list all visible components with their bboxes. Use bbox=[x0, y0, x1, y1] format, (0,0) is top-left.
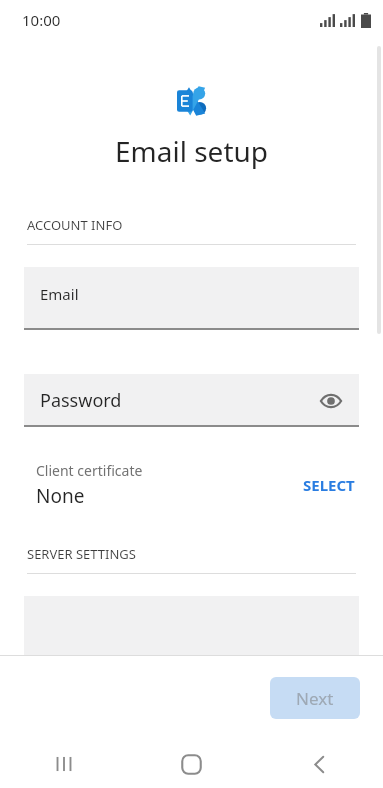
staticText: ACCOUNT INFO bbox=[27, 216, 123, 234]
button[interactable]: Recents bbox=[0, 740, 127, 788]
button[interactable]: Home bbox=[127, 740, 255, 788]
staticText: Password bbox=[40, 388, 122, 413]
button[interactable]: Next bbox=[270, 677, 360, 719]
staticText: 10:00 bbox=[22, 10, 61, 30]
button[interactable]: Client certificate bbox=[0, 461, 383, 509]
button[interactable]: Back bbox=[255, 740, 383, 788]
staticText: SELECT bbox=[303, 475, 355, 495]
staticText: Email bbox=[40, 284, 79, 304]
button[interactable]: SELECT bbox=[293, 467, 365, 503]
button[interactable]: Password bbox=[24, 374, 359, 427]
staticText: None bbox=[36, 483, 85, 509]
staticText: SERVER SETTINGS bbox=[27, 545, 136, 563]
staticText: Client certificate bbox=[36, 461, 143, 480]
staticText: Next bbox=[296, 687, 334, 710]
staticText: Email setup bbox=[115, 132, 269, 170]
button[interactable]: Email bbox=[24, 267, 359, 330]
button[interactable]: Show password bbox=[313, 383, 349, 419]
